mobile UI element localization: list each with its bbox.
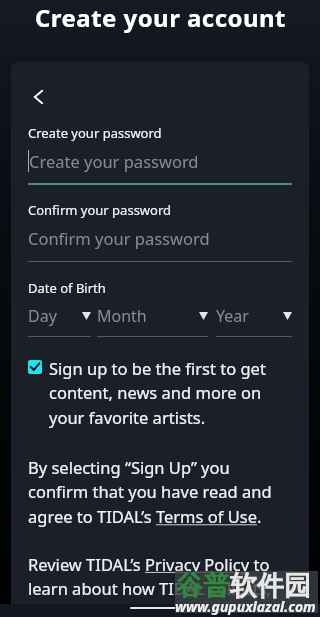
staticText: By selecting “Sign Up” you confirm that …: [28, 456, 292, 528]
staticText: Day: [28, 305, 57, 327]
staticText: 谷普: [176, 569, 230, 603]
button[interactable]: Year: [216, 305, 292, 337]
staticText: Review TIDAL’s Privacy Policy to learn a…: [28, 553, 292, 604]
staticText: Sign up to be the first to get content, …: [49, 357, 292, 429]
staticText: Confirm your password: [28, 227, 210, 249]
staticText: Confirm your password: [28, 201, 172, 219]
button[interactable]: Day: [28, 305, 91, 337]
staticText: Create your password: [28, 124, 162, 142]
staticText: Year: [216, 305, 249, 327]
button[interactable]: Month: [97, 305, 208, 337]
staticText: Create your account: [35, 1, 286, 34]
staticText: Date of Birth: [28, 279, 106, 297]
button[interactable]: Sign up to be the first to get content, …: [28, 357, 292, 429]
staticText: 软件园: [230, 569, 311, 603]
staticText: www.gupuxlazal.com: [175, 597, 316, 616]
staticText: Month: [97, 305, 147, 327]
button[interactable]: Back: [22, 81, 54, 113]
staticText: Create your password: [29, 150, 199, 172]
